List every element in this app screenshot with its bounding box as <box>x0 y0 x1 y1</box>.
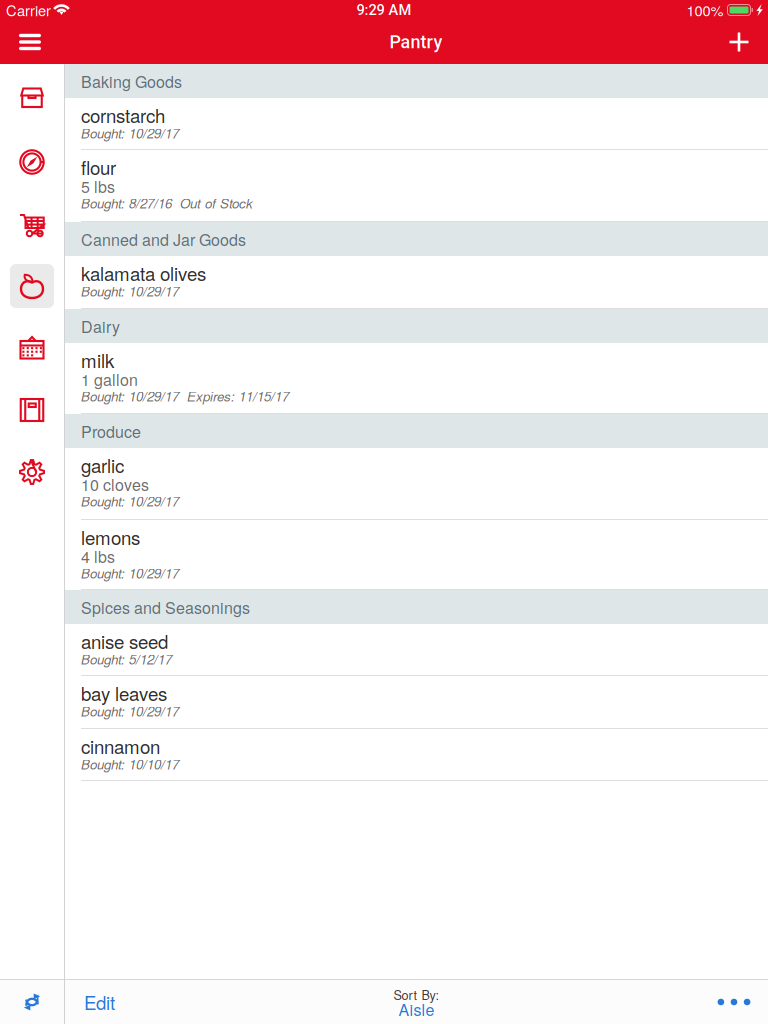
button[interactable]: Sync <box>0 980 64 1024</box>
button[interactable]: Shopping list <box>0 193 64 255</box>
button[interactable]: anise seed <box>65 624 768 676</box>
staticText: cinnamon <box>81 733 160 759</box>
button[interactable]: bay leaves <box>65 676 768 729</box>
staticText: Bought: 10/10/17 <box>81 755 179 773</box>
button[interactable]: Sort By: <box>356 980 476 1024</box>
staticText: Bought: 5/12/17 <box>81 650 172 668</box>
staticText: Bought: 10/29/17 <box>81 124 179 142</box>
staticText: Aisle <box>398 997 434 1020</box>
staticText: Carrier <box>6 0 51 20</box>
staticText: 9:29 AM <box>356 1 411 19</box>
button[interactable]: lemons <box>65 520 768 590</box>
button[interactable]: kalamata olives <box>65 256 768 309</box>
staticText: 100% <box>686 0 723 20</box>
button[interactable]: cinnamon <box>65 729 768 781</box>
staticText: Edit <box>84 989 115 1015</box>
staticText: Bought: 10/29/17 <box>81 702 179 720</box>
button[interactable]: Add item <box>717 20 761 64</box>
staticText: anise seed <box>81 628 168 654</box>
staticText: Sort By: <box>393 985 439 1003</box>
staticText: Canned and Jar Goods <box>81 227 246 250</box>
button[interactable]: cornstarch <box>65 98 768 150</box>
staticText: Bought: 10/29/17 <box>81 492 179 510</box>
button[interactable]: Calendar <box>0 317 64 379</box>
button[interactable]: More <box>706 980 762 1024</box>
staticText: 5 lbs <box>81 174 115 197</box>
staticText: 1 gallon <box>81 367 138 390</box>
staticText: 4 lbs <box>81 544 115 567</box>
staticText: bay leaves <box>81 680 167 706</box>
staticText: garlic <box>81 452 124 478</box>
staticText: Spices and Seasonings <box>81 595 250 618</box>
staticText: flour <box>81 154 116 180</box>
staticText: lemons <box>81 524 140 550</box>
staticText: 10 cloves <box>81 472 149 495</box>
button[interactable]: Edit <box>65 980 131 1024</box>
button[interactable]: Storage <box>0 64 64 131</box>
button[interactable]: Recipes <box>0 379 64 441</box>
staticText: milk <box>81 347 114 373</box>
button[interactable]: Menu <box>8 20 52 64</box>
staticText: Bought: 8/27/16 Out of Stock <box>81 194 253 212</box>
button[interactable]: Explore <box>0 131 64 193</box>
staticText: cornstarch <box>81 102 165 128</box>
staticText: kalamata olives <box>81 260 206 286</box>
button[interactable]: Pantry <box>0 255 64 317</box>
staticText: Bought: 10/29/17 <box>81 282 179 300</box>
button[interactable]: Settings <box>0 441 64 503</box>
staticText: Baking Goods <box>81 69 182 92</box>
staticText: Dairy <box>81 314 120 337</box>
staticText: Produce <box>81 419 141 442</box>
button[interactable]: flour <box>65 150 768 222</box>
staticText: Bought: 10/29/17 Expires: 11/15/17 <box>81 387 289 405</box>
staticText: Bought: 10/29/17 <box>81 564 179 582</box>
button[interactable]: garlic <box>65 448 768 520</box>
staticText: Pantry <box>389 31 442 53</box>
button[interactable]: milk <box>65 343 768 414</box>
